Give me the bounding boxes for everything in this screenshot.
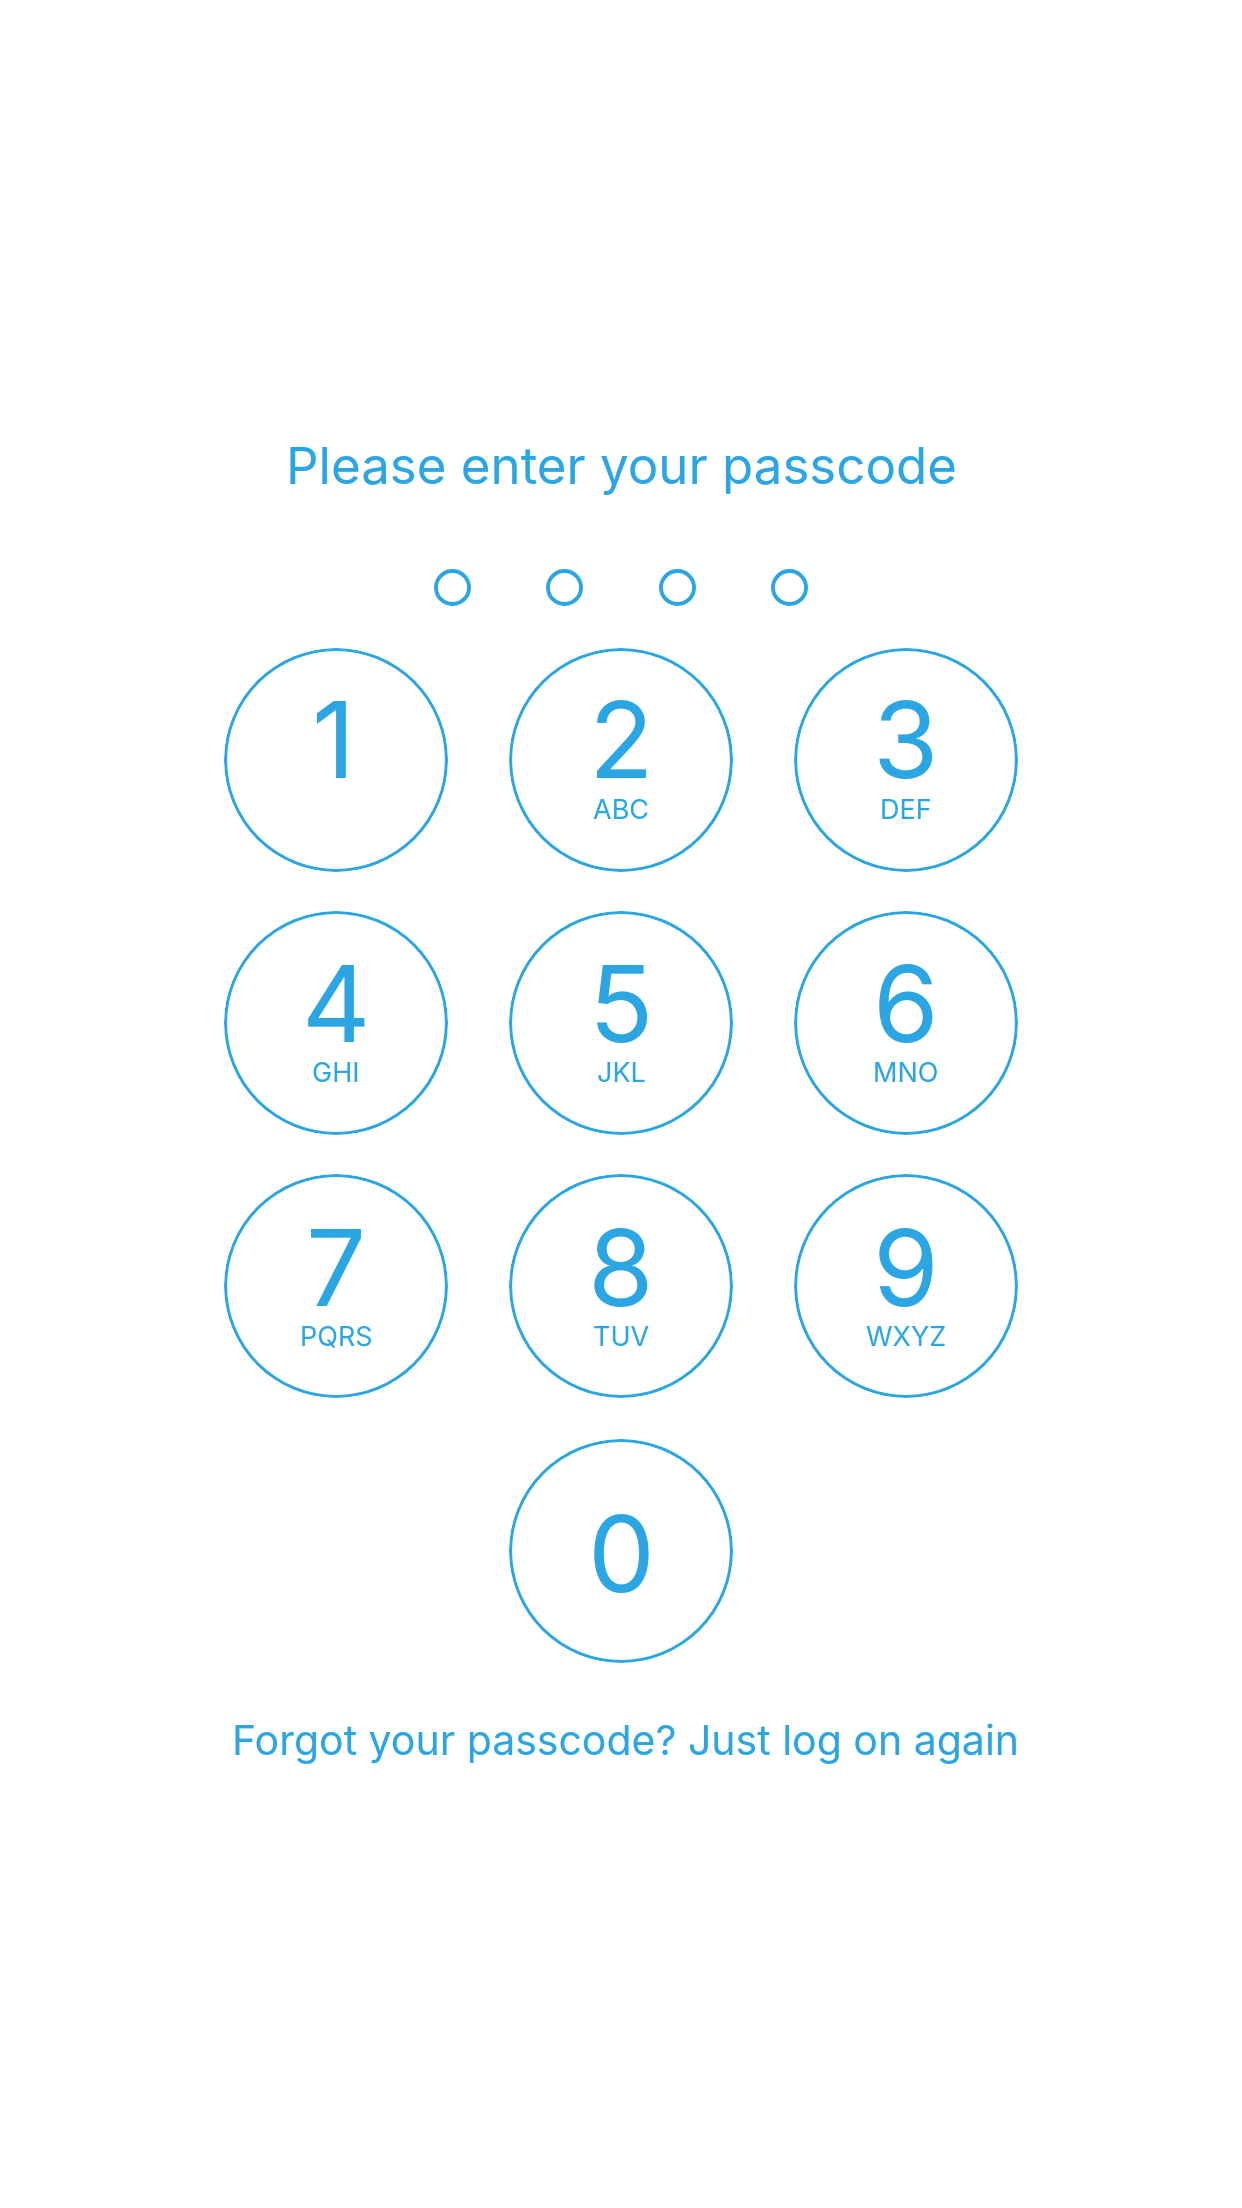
button[interactable]: Digit 5 [509, 911, 733, 1135]
button[interactable]: Digit 9 [794, 1174, 1018, 1398]
staticText: JKL [597, 1056, 646, 1089]
staticText: MNO [873, 1056, 939, 1089]
staticText: WXYZ [866, 1320, 947, 1353]
staticText: PQRS [300, 1320, 373, 1353]
staticText: 9 [873, 1203, 939, 1331]
button[interactable]: Digit 8 [509, 1174, 733, 1398]
other: Passcode character 4 [771, 569, 808, 606]
other: Passcode character 1 [434, 569, 471, 606]
button[interactable]: Digit 0 [509, 1439, 733, 1663]
staticText: DEF [880, 793, 932, 826]
button[interactable]: Digit 2 [509, 648, 733, 872]
button[interactable]: Digit 7 [224, 1174, 448, 1398]
staticText: ABC [593, 793, 650, 826]
button[interactable]: Digit 4 [224, 911, 448, 1135]
staticText: 8 [588, 1203, 654, 1331]
staticText: 4 [302, 939, 371, 1067]
other: Passcode character 2 [546, 569, 583, 606]
staticText: 7 [306, 1203, 366, 1331]
button[interactable]: Digit 6 [794, 911, 1018, 1135]
staticText: 3 [873, 675, 939, 803]
button[interactable]: Digit 1 [224, 648, 448, 872]
button[interactable]: Forgot your passcode? Just log on again [232, 1715, 1020, 1765]
staticText: 2 [589, 675, 654, 803]
staticText: Please enter your passcode [286, 435, 957, 497]
staticText: TUV [593, 1320, 650, 1353]
staticText: 5 [589, 939, 654, 1067]
button[interactable]: Digit 3 [794, 648, 1018, 872]
staticText: 1 [312, 675, 356, 803]
staticText: GHI [312, 1056, 360, 1089]
staticText: 6 [873, 939, 939, 1067]
staticText: 0 [588, 1489, 655, 1617]
other: Passcode character 3 [659, 569, 696, 606]
